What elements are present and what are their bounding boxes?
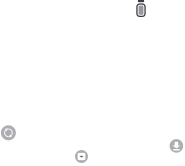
button[interactable]: Download — [170, 139, 183, 153]
button[interactable]: Refresh — [1, 125, 16, 140]
button[interactable]: Stop — [75, 150, 88, 163]
